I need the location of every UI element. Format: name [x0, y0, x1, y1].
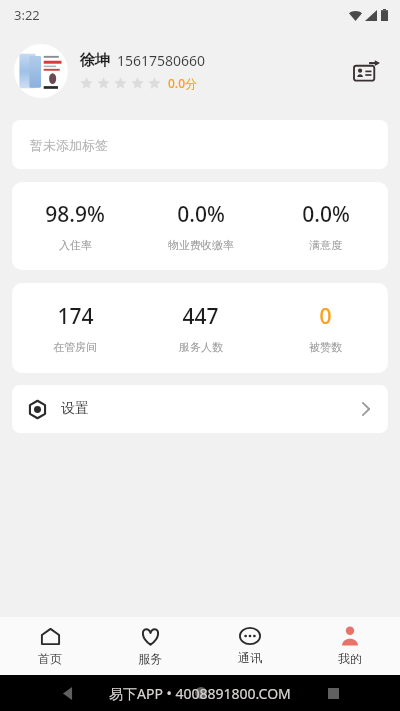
staticText: 在管房间	[53, 340, 97, 354]
staticText: 0.0%	[177, 200, 225, 229]
button[interactable]: 174	[12, 283, 388, 373]
staticText: 0	[319, 302, 332, 331]
staticText: 服务	[138, 651, 162, 666]
staticText: 15617580660	[117, 51, 206, 70]
staticText: 通讯	[238, 650, 262, 665]
staticText: 满意度	[309, 238, 342, 252]
staticText: 3:22	[14, 6, 40, 24]
button[interactable]: 服务	[100, 617, 200, 675]
staticText: 入住率	[59, 238, 92, 252]
button[interactable]: 首页	[0, 617, 100, 675]
staticText: 447	[182, 302, 219, 331]
staticText: 设置	[61, 400, 89, 418]
button[interactable]: 通讯	[200, 617, 300, 675]
staticText: 174	[57, 302, 94, 331]
button[interactable]: 头像	[0, 30, 400, 112]
staticText: 物业费收缴率	[168, 238, 234, 252]
staticText: 98.9%	[45, 200, 105, 229]
staticText: 首页	[38, 651, 62, 666]
staticText: 易下APP • 4008891800.COM	[109, 684, 291, 703]
staticText: 0.0%	[302, 200, 350, 229]
button[interactable]: 分享名片	[350, 54, 384, 88]
staticText: 0.0分	[168, 75, 197, 91]
staticText: 被赞数	[309, 340, 342, 354]
staticText: 徐坤	[80, 51, 110, 70]
staticText: 服务人数	[179, 340, 223, 354]
staticText: 我的	[338, 651, 362, 666]
button[interactable]: 暂未添加标签	[12, 120, 388, 169]
button[interactable]: 头像	[14, 44, 68, 98]
button[interactable]: 我的	[300, 617, 400, 675]
button[interactable]: 98.9%	[12, 182, 388, 270]
button[interactable]: 设置	[12, 385, 388, 433]
staticText: 暂未添加标签	[30, 137, 108, 153]
